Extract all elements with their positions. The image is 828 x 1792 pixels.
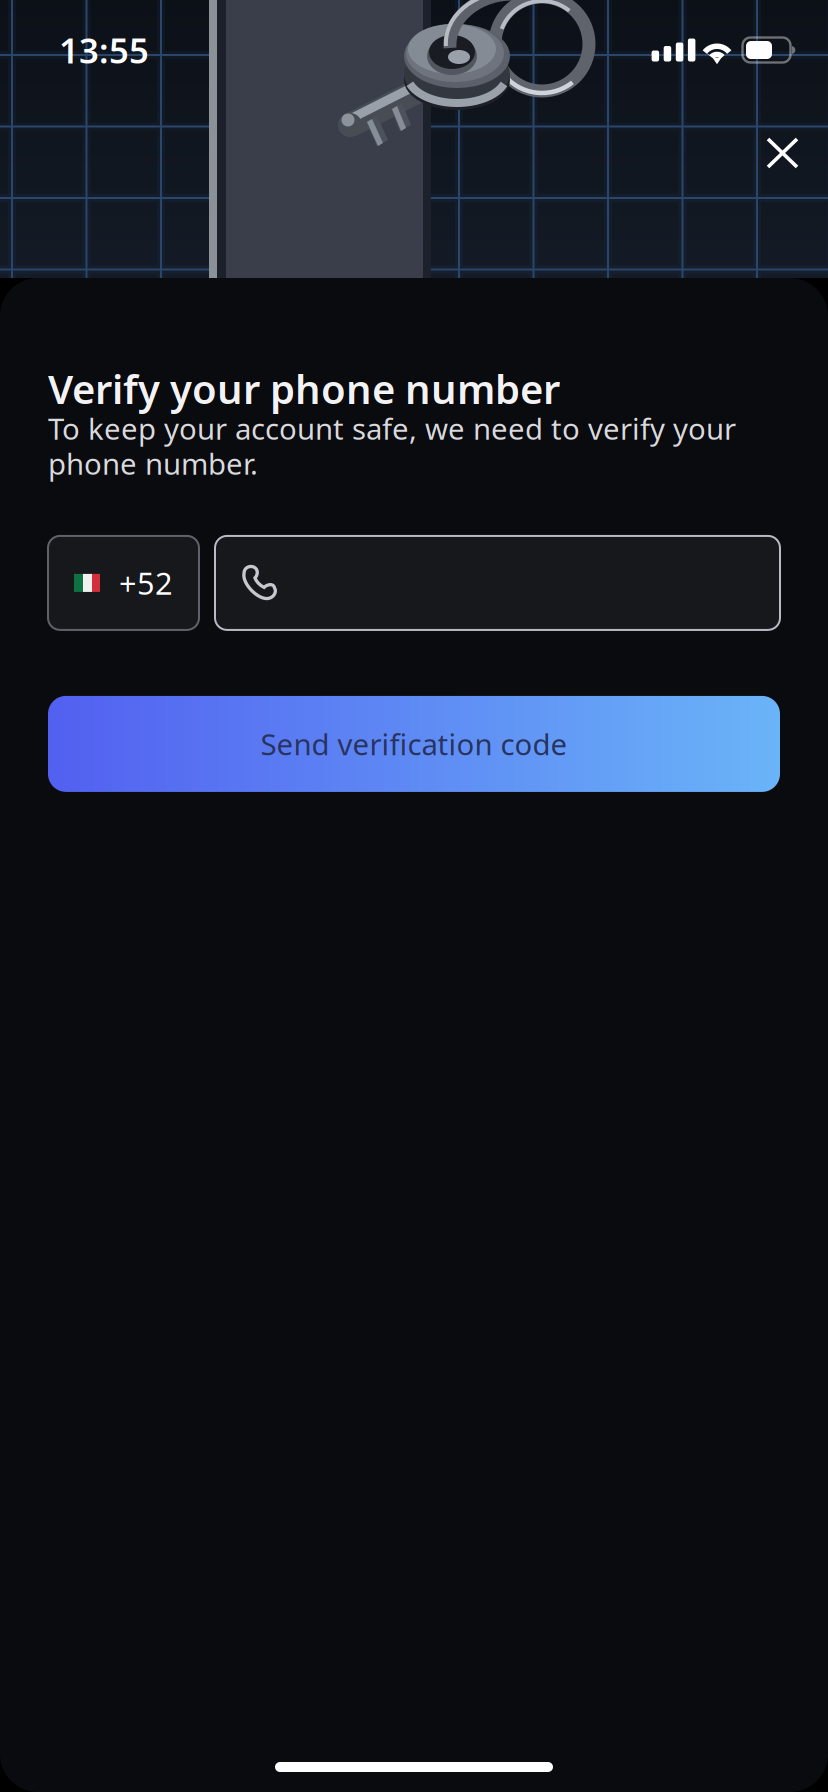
staticText: +52 xyxy=(119,562,173,603)
button[interactable]: Close xyxy=(741,113,824,193)
staticText: Send verification code xyxy=(260,724,567,763)
staticText: Verify your phone number xyxy=(48,362,560,415)
staticText: 13:55 xyxy=(59,27,149,73)
button[interactable]: +52 xyxy=(48,536,199,630)
button[interactable]: Send verification code xyxy=(48,696,780,792)
button[interactable] xyxy=(215,536,780,630)
staticText: To keep your account safe, we need to ve… xyxy=(48,409,736,483)
